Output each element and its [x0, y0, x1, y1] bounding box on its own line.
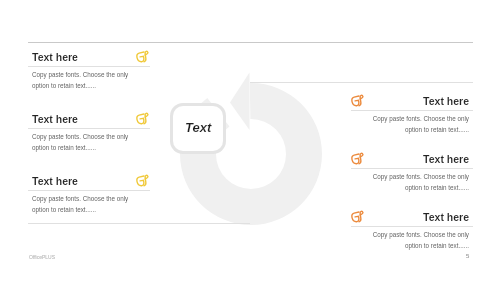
staticText: Text here [347, 95, 469, 107]
button[interactable]: Text here [28, 106, 150, 152]
staticText: 5 [466, 253, 470, 260]
staticText: Text here [32, 175, 78, 187]
button[interactable]: Text here [28, 168, 150, 214]
staticText: Copy paste fonts. Choose the only option… [347, 231, 469, 250]
staticText: Text here [32, 51, 78, 63]
button[interactable]: Text here [351, 146, 473, 192]
staticText: Text here [347, 211, 469, 223]
staticText: Text [185, 120, 212, 135]
button[interactable]: Text [170, 103, 226, 154]
button[interactable]: Text here [351, 204, 473, 250]
button[interactable]: Text here [28, 44, 150, 90]
button[interactable]: Item icon [351, 210, 364, 224]
staticText: Text here [32, 113, 78, 125]
button[interactable]: Item icon [136, 112, 149, 126]
button[interactable]: Item icon [136, 50, 149, 64]
button[interactable]: Text here [351, 88, 473, 134]
staticText: Copy paste fonts. Choose the only option… [347, 115, 469, 134]
button[interactable]: Item icon [351, 152, 364, 166]
button[interactable]: Item icon [351, 94, 364, 108]
staticText: OfficePLUS [29, 254, 56, 260]
staticText: Text here [347, 153, 469, 165]
staticText: Copy paste fonts. Choose the only option… [32, 195, 129, 214]
staticText: Copy paste fonts. Choose the only option… [32, 71, 129, 90]
button[interactable]: Item icon [136, 174, 149, 188]
staticText: Copy paste fonts. Choose the only option… [347, 173, 469, 192]
staticText: Copy paste fonts. Choose the only option… [32, 133, 129, 152]
